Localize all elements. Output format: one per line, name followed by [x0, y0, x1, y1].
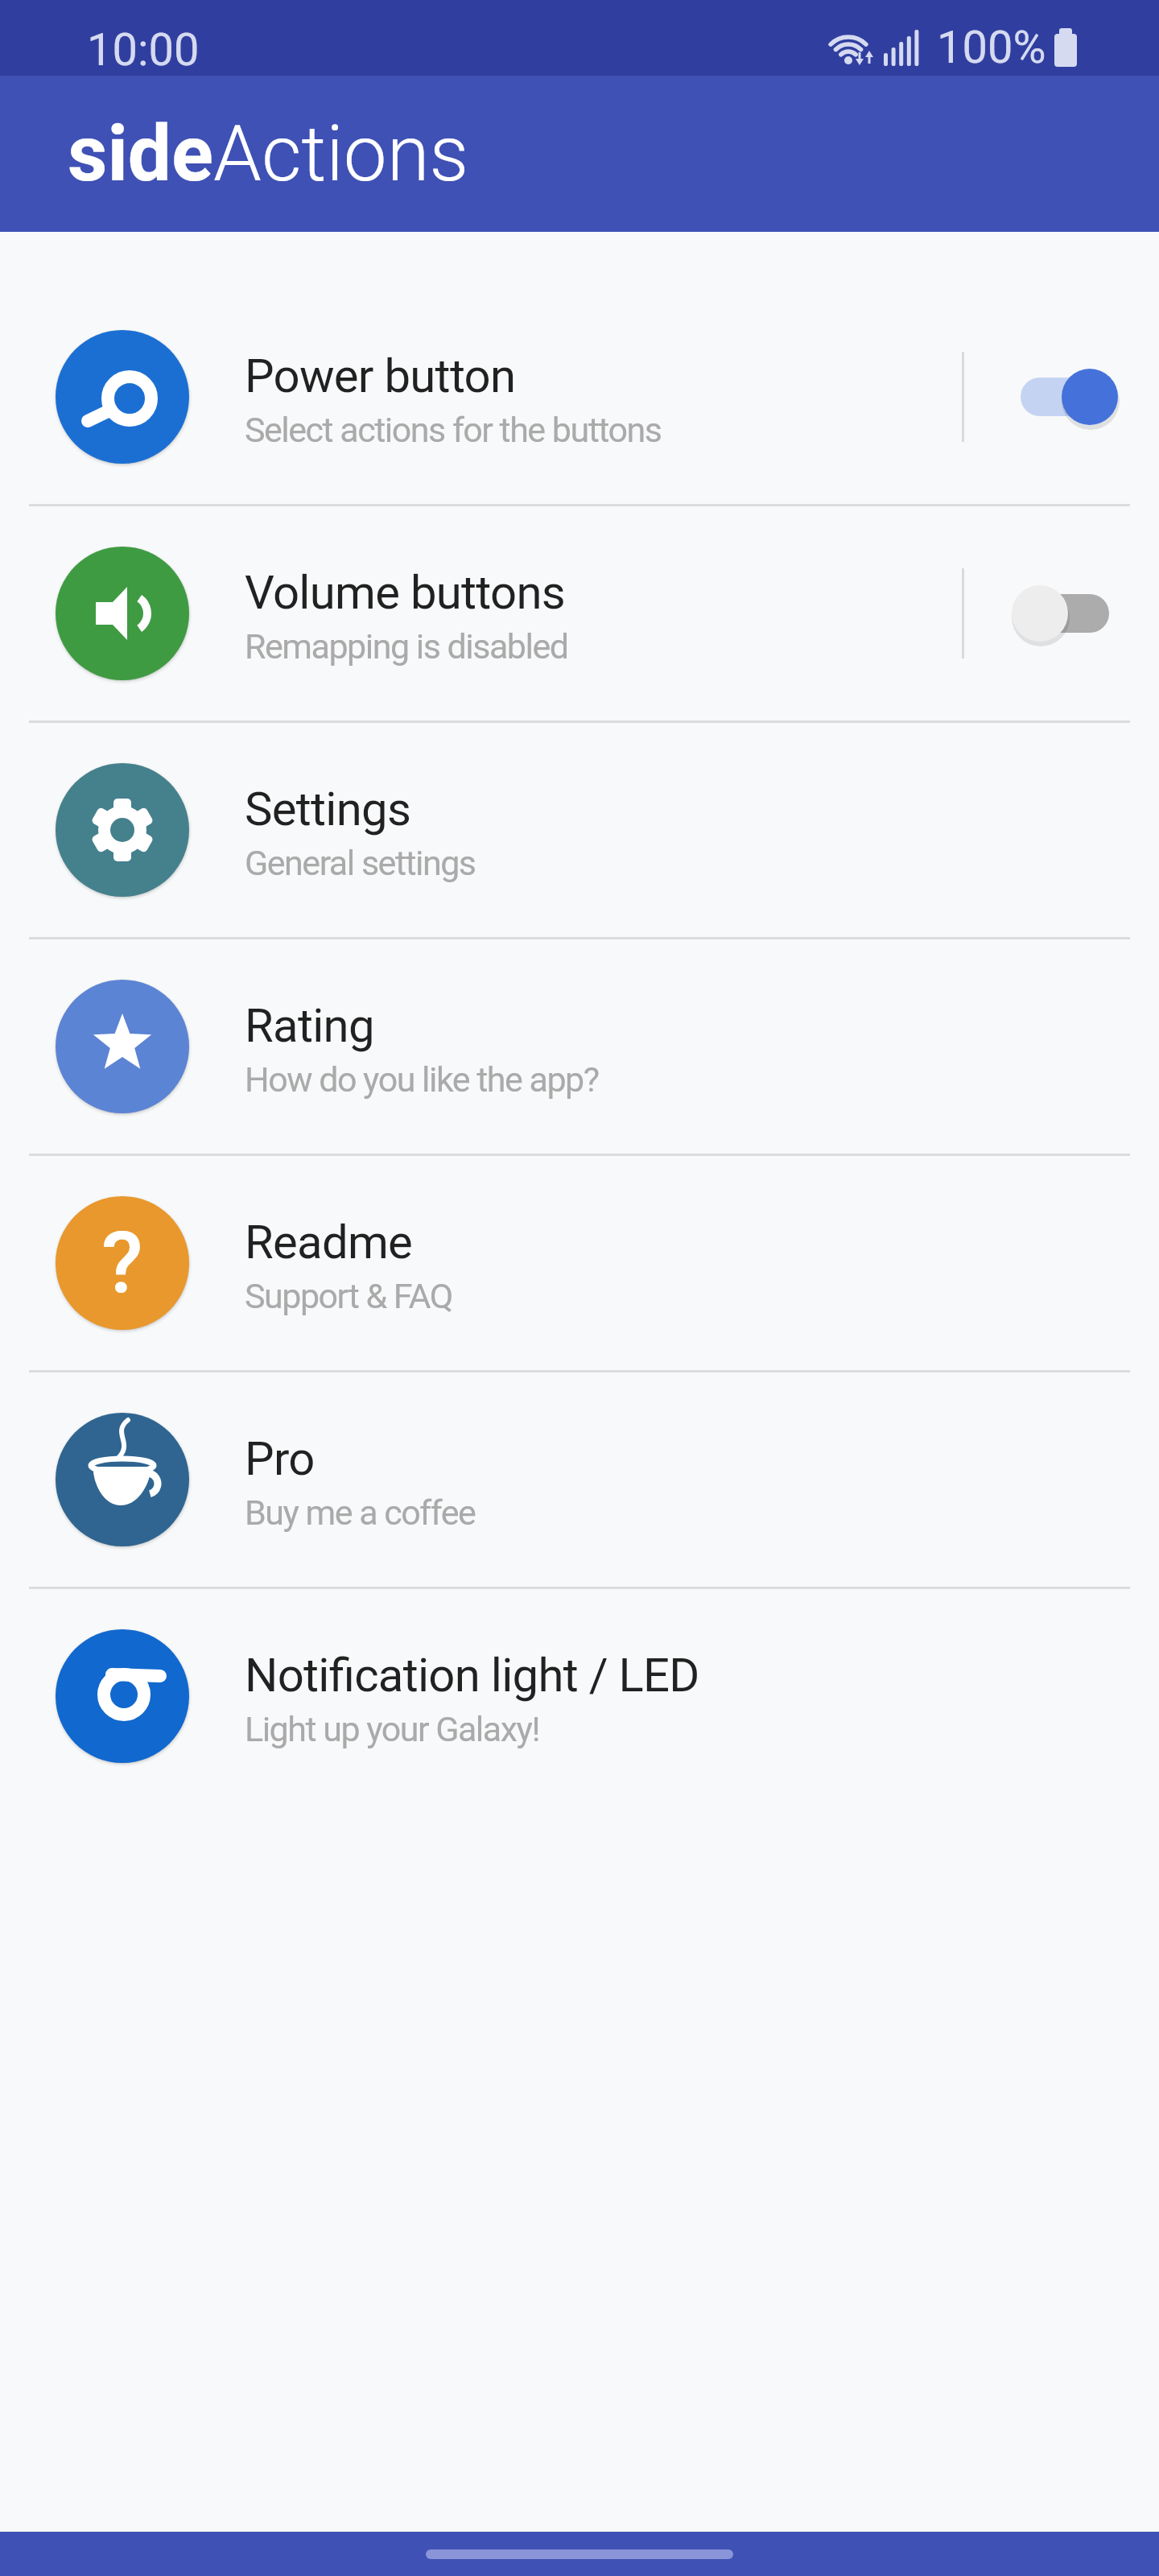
- staticText: Support & FAQ: [245, 1276, 452, 1316]
- button[interactable]: [426, 2549, 733, 2559]
- staticText: Power button: [245, 349, 516, 403]
- staticText: ?: [101, 1213, 143, 1313]
- staticText: Select actions for the buttons: [245, 410, 662, 450]
- staticText: Volume buttons: [245, 565, 565, 620]
- staticText: Remapping is disabled: [245, 626, 568, 667]
- staticText: Pro: [245, 1431, 315, 1486]
- button[interactable]: Pro: [0, 1373, 1159, 1587]
- button[interactable]: Settings: [0, 723, 1159, 937]
- staticText: 100%: [937, 21, 1046, 74]
- button[interactable]: [1006, 577, 1120, 650]
- button[interactable]: Notification light / LED: [0, 1589, 1159, 1803]
- button[interactable]: Rating: [0, 939, 1159, 1154]
- staticText: Settings: [245, 782, 411, 836]
- staticText: Readme: [245, 1215, 413, 1269]
- staticText: sideActions: [68, 109, 469, 200]
- button[interactable]: Power button: [0, 290, 1159, 504]
- staticText: Rating: [245, 998, 374, 1053]
- staticText: 10:00: [87, 23, 200, 76]
- staticText: How do you like the app?: [245, 1059, 599, 1100]
- staticText: General settings: [245, 843, 476, 883]
- staticText: Notification light / LED: [245, 1648, 699, 1703]
- button[interactable]: ?: [0, 1156, 1159, 1370]
- button[interactable]: Volume buttons: [0, 506, 1159, 720]
- staticText: Light up your Galaxy!: [245, 1709, 539, 1749]
- staticText: Buy me a coffee: [245, 1492, 476, 1533]
- button[interactable]: [1006, 361, 1120, 433]
